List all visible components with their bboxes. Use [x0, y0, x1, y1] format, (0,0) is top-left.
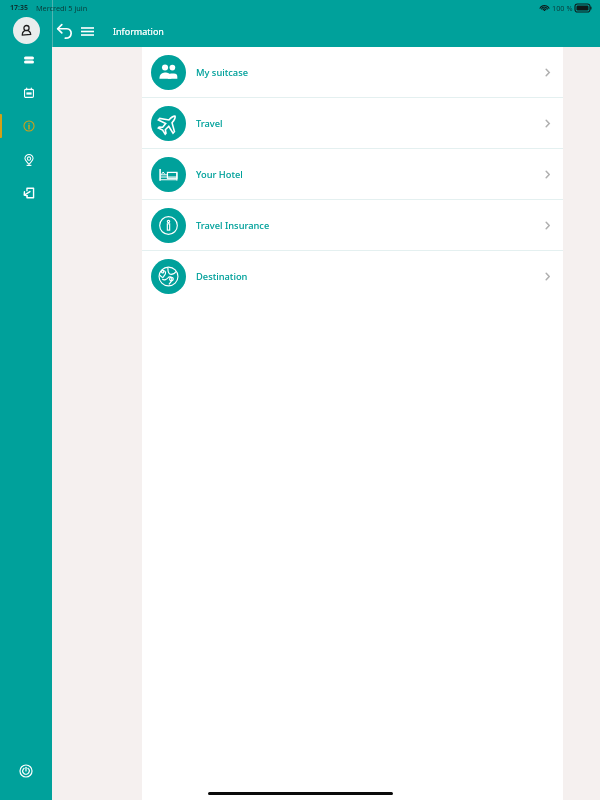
button[interactable]: Location	[3, 147, 55, 173]
button[interactable]: Information	[3, 113, 55, 139]
button[interactable]: Travel	[142, 98, 563, 148]
button[interactable]: Logout	[3, 180, 55, 206]
staticText: Destination	[196, 270, 248, 283]
button[interactable]: Profile	[13, 17, 40, 44]
staticText: My suitcase	[196, 66, 249, 79]
staticText: Your Hotel	[196, 168, 243, 181]
button[interactable]: Calendar	[3, 80, 55, 106]
button[interactable]: Menu	[75, 19, 99, 43]
button[interactable]: Destination	[142, 251, 563, 301]
button[interactable]: List	[3, 47, 55, 73]
staticText: Mercredi 5 juin	[36, 3, 88, 13]
button[interactable]: My suitcase	[142, 47, 563, 97]
staticText: Travel Insurance	[196, 219, 270, 232]
staticText: Information	[113, 25, 164, 37]
button[interactable]: Travel Insurance	[142, 200, 563, 250]
button[interactable]: Back	[54, 18, 75, 44]
staticText: 17:35	[10, 3, 28, 13]
staticText: Travel	[196, 117, 223, 130]
staticText: 100 %	[552, 3, 573, 13]
button[interactable]: Your Hotel	[142, 149, 563, 199]
button[interactable]: Power	[15, 760, 37, 782]
